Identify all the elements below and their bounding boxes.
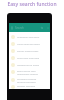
button[interactable]: Vestibulum id ligula xyxy=(9,61,50,68)
staticText: Easy search function xyxy=(7,1,57,8)
button[interactable]: Maecenas sed diam xyxy=(9,33,50,40)
button[interactable]: Cras justo odio dapi xyxy=(9,54,50,61)
button[interactable]: Search xyxy=(39,25,45,31)
staticText: Search xyxy=(15,26,24,30)
button[interactable]: Nulla vitae elit libero xyxy=(9,40,50,47)
staticText: Maecenas sed diam xyxy=(17,35,40,38)
staticText: Integer posuere xyxy=(17,84,36,87)
staticText: Vestibulum id ligula xyxy=(17,63,40,66)
staticText: Nulla vitae elit libero xyxy=(17,42,40,45)
button[interactable]: Integer posuere xyxy=(9,84,50,89)
staticText: tempus porttitor xyxy=(17,80,36,83)
button[interactable]: More options xyxy=(45,25,50,30)
staticText: Cras justo odio dapi xyxy=(17,56,40,59)
staticText: Curabitur blandit xyxy=(17,77,37,80)
staticText: Donec ullamcorper xyxy=(17,49,39,52)
button[interactable]: Etiam porta sem xyxy=(9,68,50,76)
staticText: malesuada magna xyxy=(17,72,38,75)
button[interactable]: Curabitur blandit xyxy=(9,76,50,84)
button[interactable]: Menu xyxy=(9,25,15,31)
button[interactable]: Donec ullamcorper xyxy=(9,47,50,54)
staticText: Etiam porta sem xyxy=(17,69,36,72)
